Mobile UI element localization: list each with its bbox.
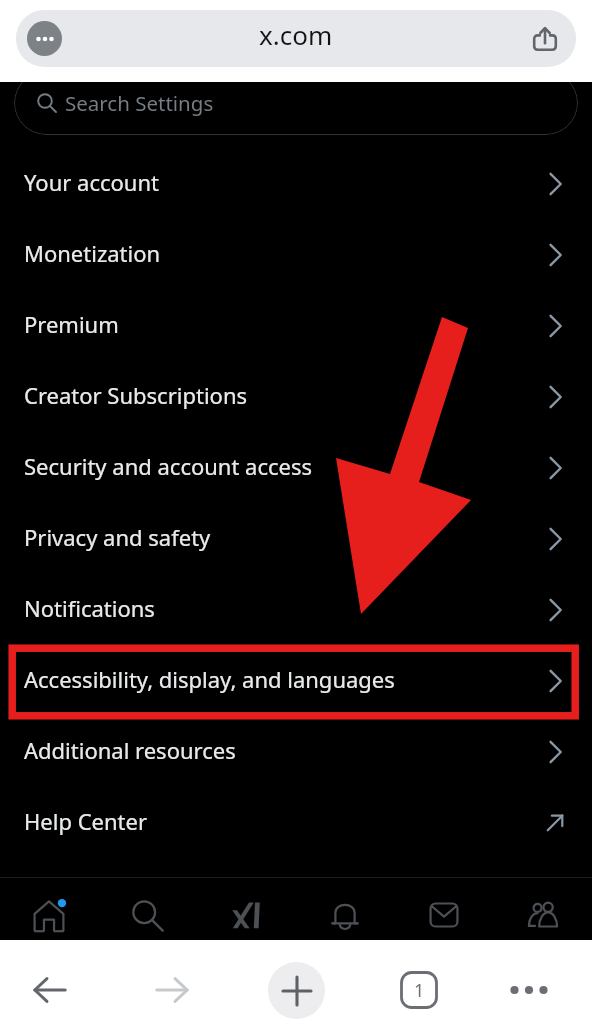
staticText: x.com (259, 17, 333, 52)
staticText: Creator Subscriptions (24, 380, 542, 410)
button[interactable]: Monetization (0, 219, 592, 290)
button[interactable]: More (495, 956, 563, 1024)
button[interactable]: Security and account access (0, 432, 592, 503)
button[interactable]: Notifications (295, 878, 394, 940)
staticText: Security and account access (24, 451, 542, 481)
staticText: Accessibility, display, and languages (24, 664, 542, 694)
button[interactable]: Share (526, 20, 564, 58)
button[interactable]: Tabs (385, 956, 453, 1024)
staticText: Notifications (24, 593, 542, 623)
button[interactable]: Notifications (0, 574, 592, 645)
button[interactable]: Communities (493, 878, 592, 940)
button[interactable]: Accessibility, display, and languages (0, 645, 592, 716)
button[interactable]: Creator Subscriptions (0, 361, 592, 432)
staticText: Your account (24, 167, 542, 197)
button[interactable]: Premium (0, 290, 592, 361)
staticText: Additional resources (24, 735, 542, 765)
button[interactable]: Your account (0, 148, 592, 219)
button[interactable]: Additional resources (0, 716, 592, 787)
button[interactable]: Grok (196, 878, 295, 940)
staticText: Privacy and safety (24, 522, 542, 552)
button[interactable]: Privacy and safety (0, 503, 592, 574)
staticText: 1 (414, 978, 425, 1003)
staticText: Search Settings (65, 89, 214, 117)
staticText: Help Center (24, 806, 542, 836)
button[interactable]: Search (98, 878, 196, 940)
button[interactable]: New tab (262, 956, 330, 1024)
staticText: Monetization (24, 238, 542, 268)
button[interactable]: Forward (138, 956, 206, 1024)
button[interactable]: Home (0, 878, 98, 940)
button[interactable]: Page settings (27, 21, 62, 56)
button[interactable]: Help Center (0, 787, 592, 858)
button[interactable]: Messages (394, 878, 493, 940)
button[interactable]: Search Settings (14, 82, 578, 135)
button[interactable]: Back (16, 956, 84, 1024)
staticText: Premium (24, 309, 542, 339)
